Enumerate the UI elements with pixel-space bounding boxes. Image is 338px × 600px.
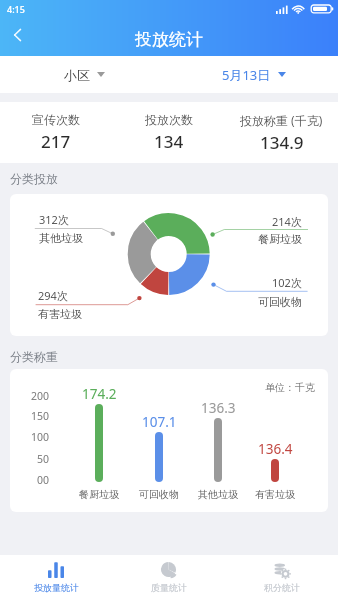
staticText: 有害垃圾 <box>255 488 295 501</box>
staticText: 宣传次数 <box>32 112 80 127</box>
staticText: 107.1 <box>142 413 177 431</box>
staticText: 投放称重 (千克) <box>240 112 323 128</box>
staticText: 分类投放 <box>10 171 58 186</box>
staticText: 5月13日 <box>222 66 271 84</box>
button[interactable]: 积分统计 <box>225 555 338 600</box>
button[interactable]: Back <box>0 20 36 50</box>
staticText: 小区 <box>64 67 90 83</box>
staticText: 其他垃圾 <box>198 488 238 501</box>
staticText: 294次 <box>38 288 68 303</box>
staticText: 217 <box>41 130 71 153</box>
staticText: 餐厨垃圾 <box>258 232 302 246</box>
staticText: 其他垃圾 <box>39 231 83 245</box>
staticText: 134.9 <box>260 131 304 154</box>
staticText: 可回收物 <box>258 295 302 309</box>
staticText: 单位：千克 <box>265 381 315 394</box>
staticText: 200 <box>31 389 50 403</box>
staticText: 质量统计 <box>151 582 187 593</box>
staticText: 136.4 <box>258 440 293 458</box>
staticText: 100 <box>31 430 50 444</box>
staticText: 174.2 <box>82 385 117 403</box>
staticText: 投放统计 <box>135 29 203 50</box>
staticText: 214次 <box>272 214 302 229</box>
button[interactable]: 5月13日 <box>169 56 338 93</box>
button[interactable]: 质量统计 <box>112 555 225 600</box>
staticText: 4:15 <box>7 3 25 15</box>
staticText: 00 <box>37 473 50 487</box>
staticText: 150 <box>31 409 50 423</box>
staticText: 分类称重 <box>10 349 58 364</box>
staticText: 有害垃圾 <box>38 307 82 321</box>
button[interactable]: 小区 <box>0 56 169 93</box>
staticText: 136.3 <box>201 399 236 417</box>
staticText: 102次 <box>272 275 302 290</box>
staticText: 餐厨垃圾 <box>79 488 119 501</box>
staticText: 投放次数 <box>145 112 193 127</box>
staticText: 312次 <box>39 212 69 227</box>
staticText: 50 <box>37 452 50 466</box>
staticText: 积分统计 <box>264 582 300 593</box>
staticText: 134 <box>154 130 184 153</box>
button[interactable]: 投放量统计 <box>0 555 112 600</box>
staticText: 可回收物 <box>139 488 179 501</box>
staticText: 投放量统计 <box>34 582 79 593</box>
